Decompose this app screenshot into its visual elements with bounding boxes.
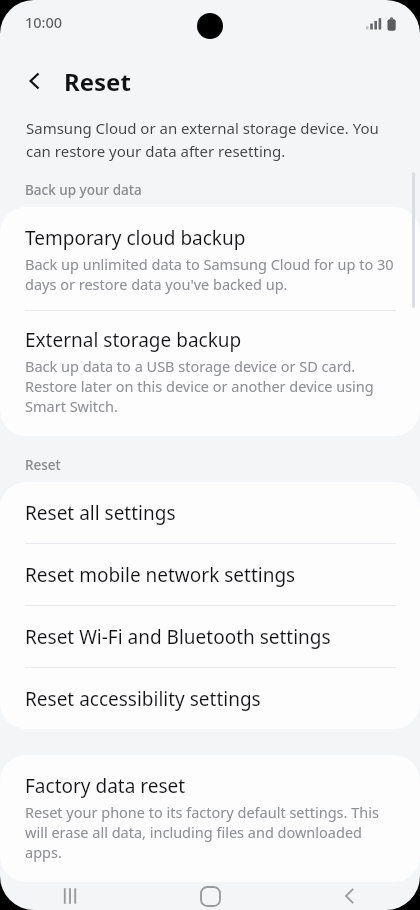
button[interactable]: Recent apps	[0, 882, 140, 910]
staticText: Reset Wi-Fi and Bluetooth settings	[25, 624, 331, 650]
staticText: Back up your data	[25, 181, 142, 199]
staticText: Temporary cloud backup	[25, 225, 246, 251]
staticText: Factory data reset	[25, 773, 186, 799]
button[interactable]: Reset Wi-Fi and Bluetooth settings	[0, 606, 420, 667]
staticText: Reset	[64, 65, 131, 98]
staticText: Samsung Cloud or an external storage dev…	[26, 118, 394, 161]
button[interactable]: Factory data reset	[0, 755, 420, 882]
button[interactable]: Home	[140, 882, 280, 910]
button[interactable]: External storage backup	[0, 311, 420, 436]
button[interactable]: Reset all settings	[0, 482, 420, 543]
staticText: 10:00	[25, 12, 63, 32]
staticText: Back up unlimited data to Samsung Cloud …	[25, 254, 398, 294]
button[interactable]: Back	[14, 60, 56, 102]
staticText: Reset all settings	[25, 500, 176, 526]
button[interactable]: Temporary cloud backup	[0, 207, 420, 310]
staticText: Reset	[25, 456, 61, 474]
staticText: Back up data to a USB storage device or …	[25, 356, 398, 416]
button[interactable]: Reset accessibility settings	[0, 668, 420, 729]
staticText: External storage backup	[25, 327, 242, 353]
button[interactable]: Back	[280, 882, 420, 910]
button[interactable]: Reset mobile network settings	[0, 544, 420, 605]
staticText: Reset your phone to its factory default …	[25, 802, 398, 862]
staticText: Reset accessibility settings	[25, 686, 261, 712]
staticText: Reset mobile network settings	[25, 562, 296, 588]
